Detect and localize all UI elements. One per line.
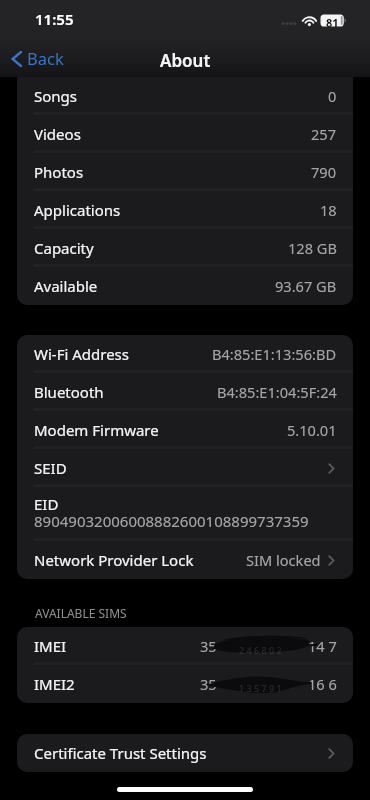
staticText: 93.67 GB [275,276,337,296]
staticText: IMEI [34,636,67,656]
button[interactable]: Bluetooth [17,373,353,411]
staticText: 35 [200,636,217,656]
staticText: 35 [200,674,217,694]
staticText: Wi-Fi Address [34,344,129,364]
staticText: Modem Firmware [34,420,159,440]
button[interactable]: Applications [17,191,353,229]
staticText: 81 [326,15,339,30]
button[interactable]: Wi-Fi Address [17,335,353,373]
staticText: 1 3 5 7 9 1 [239,682,282,694]
staticText: 11:55 [35,9,74,29]
staticText: SEID [34,458,67,478]
button[interactable]: IMEI [17,627,353,665]
button[interactable]: SEID [17,449,353,487]
staticText: 0 [328,86,337,106]
staticText: Capacity [34,238,94,258]
staticText: Bluetooth [34,382,104,402]
button[interactable]: Available [17,267,353,305]
button[interactable]: IMEI2 [17,665,353,703]
staticText: EID [34,494,59,514]
button[interactable]: Network Provider Lock [17,541,353,579]
staticText: Certificate Trust Settings [34,743,207,763]
button[interactable]: Videos [17,115,353,153]
button[interactable]: Photos [17,153,353,191]
staticText: 14 7 [308,636,337,656]
staticText: B4:85:E1:13:56:BD [212,344,337,364]
staticText: Photos [34,162,84,182]
staticText: B4:85:E1:04:5F:24 [217,382,337,402]
staticText: Network Provider Lock [34,550,194,570]
staticText: 16 6 [308,674,337,694]
staticText: 257 [311,124,337,144]
staticText: About [160,49,211,72]
staticText: SIM locked [246,550,321,570]
staticText: 89049032006008882600108899737359 [34,511,309,531]
staticText: Available [34,276,98,296]
staticText: Songs [34,86,77,106]
button[interactable]: Songs [17,77,353,115]
staticText: Applications [34,200,121,220]
button[interactable]: Back [0,44,72,74]
button[interactable]: Modem Firmware [17,411,353,449]
staticText: 790 [311,162,337,182]
staticText: 18 [320,200,337,220]
staticText: AVAILABLE SIMS [35,605,127,621]
staticText: Videos [34,124,81,144]
button[interactable]: EID [17,487,353,541]
staticText: 5.10.01 [287,420,337,440]
staticText: Back [27,47,64,69]
staticText: 2 4 6 8 0 2 [239,644,282,656]
staticText: 128 GB [288,238,337,258]
button[interactable]: Capacity [17,229,353,267]
button[interactable]: Certificate Trust Settings [17,734,353,772]
staticText: IMEI2 [34,674,75,694]
